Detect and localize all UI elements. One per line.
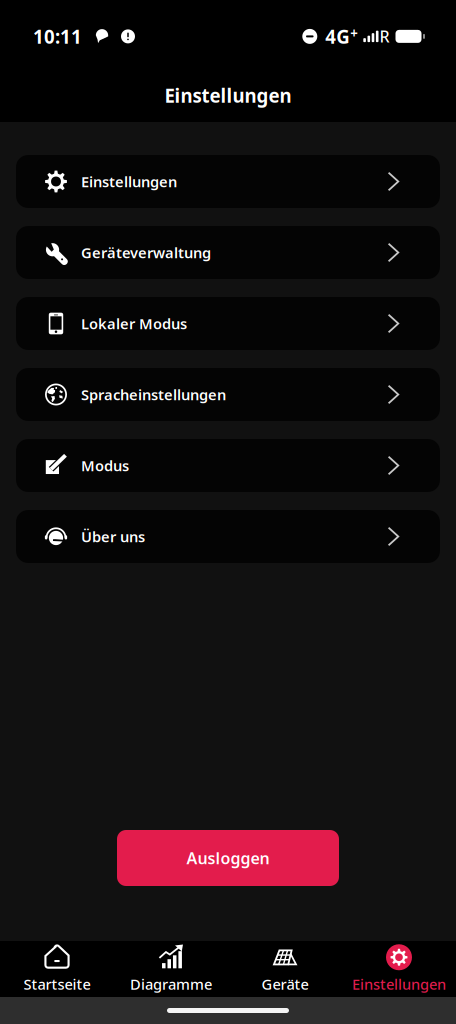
staticText: + — [350, 24, 358, 42]
staticText: Geräteverwaltung — [81, 243, 211, 262]
button[interactable]: Geräteverwaltung — [16, 226, 440, 279]
staticText: 10:11 — [33, 24, 82, 49]
staticText: Lokaler Modus — [81, 314, 187, 333]
button[interactable]: Lokaler Modus — [16, 297, 440, 350]
staticText: Geräte — [261, 974, 308, 994]
button[interactable]: Geräte — [228, 941, 342, 997]
staticText: Startseite — [23, 974, 90, 994]
button[interactable]: Startseite — [0, 941, 114, 997]
staticText: 4G — [325, 24, 350, 49]
button[interactable]: Einstellungen — [16, 155, 440, 208]
button[interactable]: Diagramme — [114, 941, 228, 997]
staticText: Modus — [81, 456, 129, 475]
staticText: Einstellungen — [164, 83, 291, 108]
staticText: Einstellungen — [352, 974, 446, 994]
button[interactable]: Modus — [16, 439, 440, 492]
staticText: Einstellungen — [81, 172, 177, 191]
button[interactable]: Über uns — [16, 510, 440, 563]
staticText: Ausloggen — [186, 847, 269, 869]
button[interactable]: Ausloggen — [117, 830, 339, 886]
staticText: Spracheinstellungen — [81, 385, 226, 404]
button[interactable]: Spracheinstellungen — [16, 368, 440, 421]
staticText: Diagramme — [130, 974, 212, 994]
button[interactable]: Einstellungen — [342, 941, 456, 997]
staticText: R — [379, 26, 389, 47]
staticText: Über uns — [81, 527, 145, 546]
